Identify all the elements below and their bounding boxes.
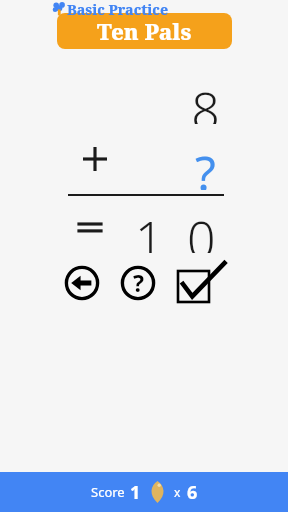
staticText: ? <box>133 267 144 298</box>
staticText: 6 <box>187 480 198 505</box>
button[interactable]: Score <box>0 472 288 512</box>
button[interactable]: Ten Pals <box>57 13 232 49</box>
button[interactable]: ? <box>186 140 224 190</box>
staticText: 0 <box>187 205 216 253</box>
staticText: 1 <box>135 205 164 253</box>
button[interactable]: Help <box>120 265 156 301</box>
staticText: Score <box>91 483 125 501</box>
staticText: 1 <box>130 480 141 505</box>
staticText: Basic Practice <box>67 0 169 19</box>
button[interactable]: Confirm <box>175 261 227 303</box>
button[interactable]: Back <box>64 265 100 301</box>
staticText: x <box>174 484 181 500</box>
staticText: Ten Pals <box>97 16 192 46</box>
staticText: 8 <box>191 76 220 124</box>
staticText: ? <box>195 140 216 190</box>
